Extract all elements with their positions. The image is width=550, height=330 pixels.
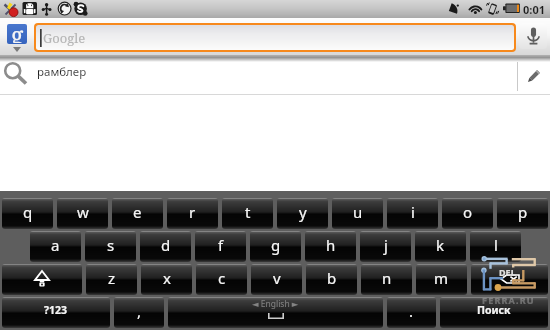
- button[interactable]: u: [332, 198, 383, 229]
- button[interactable]: w: [57, 198, 108, 229]
- button[interactable]: Search provider: [7, 24, 27, 44]
- staticText: .: [409, 301, 414, 321]
- button[interactable]: s: [85, 231, 136, 262]
- button[interactable]: b: [306, 264, 357, 295]
- staticText: c: [218, 268, 226, 288]
- button[interactable]: f: [195, 231, 246, 262]
- staticText: u: [353, 202, 363, 222]
- button[interactable]: e: [112, 198, 163, 229]
- button[interactable]: x: [141, 264, 192, 295]
- button[interactable]: c: [196, 264, 247, 295]
- staticText: s: [107, 235, 115, 255]
- staticText: g: [11, 19, 24, 43]
- staticText: l: [494, 235, 498, 255]
- button[interactable]: a: [30, 231, 81, 262]
- staticText: h: [326, 235, 336, 255]
- staticText: e: [133, 202, 142, 222]
- staticText: ◄ English ►: [252, 298, 299, 310]
- button[interactable]: .: [387, 297, 436, 328]
- staticText: q: [23, 202, 33, 222]
- staticText: m: [434, 268, 449, 288]
- button[interactable]: l: [470, 231, 521, 262]
- button[interactable]: Поиск: [440, 297, 548, 328]
- button[interactable]: n: [361, 264, 412, 295]
- button[interactable]: t: [222, 198, 273, 229]
- button[interactable]: q: [2, 198, 53, 229]
- staticText: y: [299, 202, 307, 222]
- staticText: 0:01: [523, 2, 545, 17]
- button[interactable]: k: [415, 231, 466, 262]
- button[interactable]: i: [387, 198, 438, 229]
- staticText: ?123: [44, 303, 68, 317]
- button[interactable]: Shift: [2, 264, 82, 295]
- staticText: ,: [137, 301, 142, 321]
- staticText: t: [245, 202, 251, 222]
- button[interactable]: ,: [114, 297, 164, 328]
- button[interactable]: ?123: [2, 297, 110, 328]
- button[interactable]: j: [360, 231, 411, 262]
- button[interactable]: h: [305, 231, 356, 262]
- staticText: g: [271, 235, 281, 255]
- button[interactable]: Delete: [471, 264, 548, 295]
- button[interactable]: Voice search: [519, 23, 547, 49]
- button[interactable]: g: [250, 231, 301, 262]
- staticText: w: [77, 202, 89, 222]
- staticText: Поиск: [477, 303, 511, 317]
- staticText: n: [382, 268, 392, 288]
- staticText: v: [273, 268, 281, 288]
- button[interactable]: Edit query: [517, 58, 550, 95]
- button[interactable]: o: [442, 198, 493, 229]
- staticText: d: [161, 235, 171, 255]
- staticText: p: [518, 202, 528, 222]
- button[interactable]: d: [140, 231, 191, 262]
- button[interactable]: y: [277, 198, 328, 229]
- button[interactable]: m: [416, 264, 467, 295]
- button[interactable]: z: [86, 264, 137, 295]
- staticText: o: [463, 202, 473, 222]
- staticText: FERRA.RU: [482, 294, 535, 306]
- staticText: j: [384, 235, 388, 255]
- button[interactable]: v: [251, 264, 302, 295]
- button[interactable]: Google: [36, 25, 514, 50]
- button[interactable]: рамблер: [0, 58, 550, 95]
- button[interactable]: p: [497, 198, 548, 229]
- staticText: Google: [43, 29, 86, 47]
- staticText: x: [163, 268, 171, 288]
- staticText: k: [436, 235, 445, 255]
- staticText: рамблер: [37, 64, 87, 80]
- staticText: z: [108, 268, 116, 288]
- staticText: r: [189, 202, 196, 222]
- staticText: f: [218, 235, 224, 255]
- staticText: i: [411, 202, 415, 222]
- button[interactable]: Space: [168, 297, 383, 328]
- staticText: a: [51, 235, 60, 255]
- staticText: b: [327, 268, 337, 288]
- staticText: DEL: [499, 266, 516, 278]
- button[interactable]: r: [167, 198, 218, 229]
